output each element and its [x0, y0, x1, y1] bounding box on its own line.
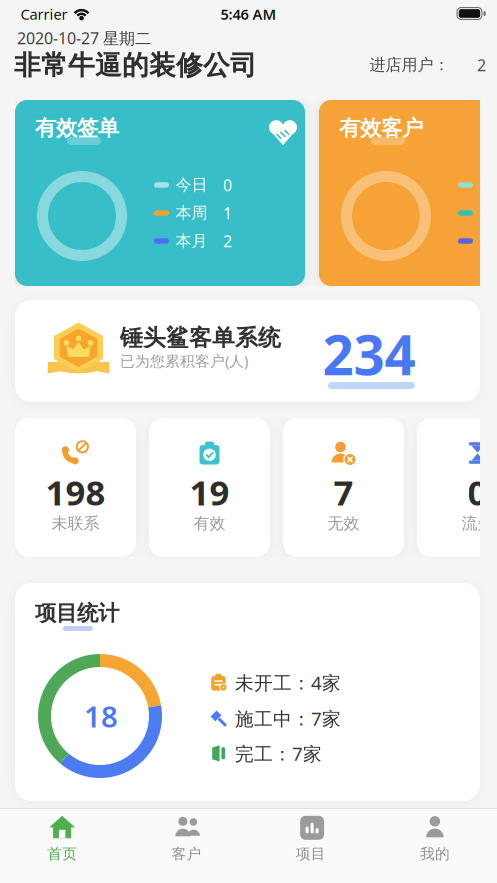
button[interactable]: 客户	[124, 815, 248, 863]
staticText: 234	[322, 318, 415, 390]
button[interactable]: 0	[417, 418, 497, 557]
staticText: 5:46 AM	[220, 4, 276, 24]
staticText: 2	[477, 54, 486, 76]
button[interactable]: 198	[15, 418, 136, 557]
staticText: 项目	[296, 845, 326, 863]
staticText: 未开工：4家	[235, 670, 341, 695]
staticText: 本周	[175, 203, 207, 223]
staticText: 流失	[461, 514, 493, 533]
button[interactable]: 我的	[373, 815, 497, 863]
button[interactable]: 有效签单	[15, 100, 305, 286]
staticText: 无效	[327, 514, 359, 533]
staticText: 2	[223, 230, 232, 252]
button[interactable]: 首页	[0, 815, 124, 863]
staticText: 有效	[193, 514, 225, 533]
staticText: 首页	[47, 845, 77, 863]
staticText: 18	[84, 696, 118, 735]
staticText: 完工：7家	[235, 741, 322, 766]
staticText: 进店用户：	[369, 55, 449, 75]
staticText: 施工中：7家	[235, 706, 341, 731]
staticText: 7	[333, 469, 353, 515]
staticText: Carrier	[20, 4, 67, 24]
staticText: 有效签单	[35, 115, 119, 141]
staticText: 锤头鲨客单系统	[120, 324, 281, 352]
staticText: 我的	[420, 845, 450, 863]
button[interactable]: 项目	[248, 815, 373, 863]
staticText: 19	[189, 469, 229, 515]
staticText: 项目统计	[35, 600, 119, 626]
staticText: 1	[223, 202, 232, 224]
staticText: 今日	[175, 175, 207, 195]
staticText: 客户	[171, 845, 201, 863]
button[interactable]: 锤头鲨客单系统	[15, 300, 480, 402]
staticText: 198	[45, 469, 105, 515]
staticText: 2020-10-27 星期二	[17, 27, 151, 49]
staticText: 未联系	[51, 514, 99, 533]
staticText: 非常牛逼的装修公司	[14, 49, 257, 82]
staticText: 有效客户	[339, 115, 423, 141]
staticText: 已为您累积客户(人)	[120, 351, 248, 370]
button[interactable]: 19	[149, 418, 270, 557]
staticText: 本月	[175, 231, 207, 251]
staticText: 0	[223, 174, 232, 196]
button[interactable]: 有效客户	[319, 100, 497, 286]
button[interactable]: 7	[283, 418, 404, 557]
staticText: 0	[467, 469, 487, 515]
